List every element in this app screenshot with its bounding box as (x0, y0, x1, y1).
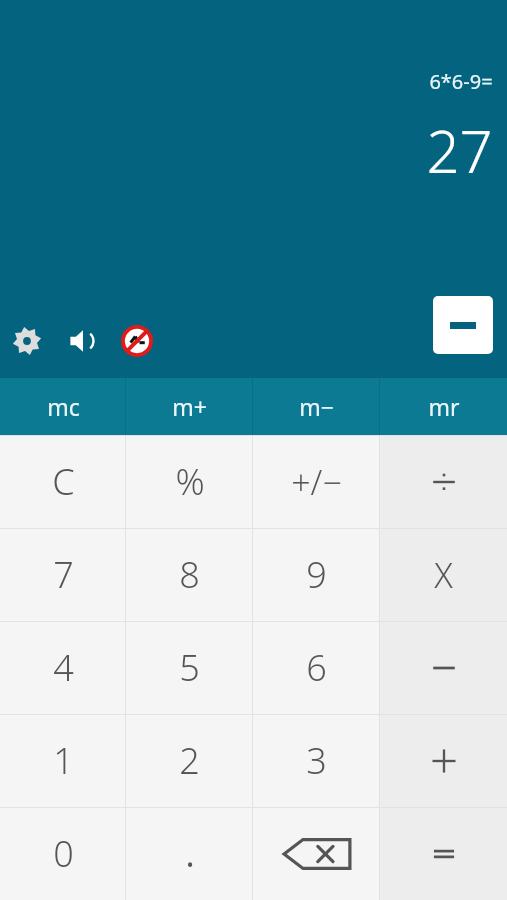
staticText: X (434, 552, 453, 598)
staticText: 9 (306, 550, 327, 599)
staticText: 5 (179, 643, 200, 692)
button[interactable]: 0 (0, 807, 126, 900)
button[interactable]: Settings (8, 322, 46, 360)
button[interactable]: m− (253, 378, 380, 435)
button[interactable]: Sound (64, 322, 102, 360)
button[interactable]: 1 (0, 714, 126, 807)
button[interactable]: mr (380, 378, 507, 435)
staticText: mc (47, 391, 80, 422)
staticText: m+ (172, 391, 207, 422)
button[interactable]: X (380, 528, 507, 621)
staticText: % (175, 457, 205, 506)
button[interactable]: m+ (126, 378, 253, 435)
button[interactable]: +/− (253, 435, 380, 528)
button[interactable]: 9 (253, 528, 380, 621)
button[interactable]: mc (0, 378, 126, 435)
button[interactable] (380, 621, 507, 714)
staticText: 2 (179, 736, 200, 785)
button[interactable]: 6 (253, 621, 380, 714)
button[interactable]: 3 (253, 714, 380, 807)
staticText: mr (428, 391, 460, 422)
button[interactable]: 4 (0, 621, 126, 714)
button[interactable] (253, 807, 380, 900)
staticText: 8 (179, 550, 200, 599)
button[interactable]: Minimize (433, 296, 493, 354)
staticText: 1 (53, 736, 74, 785)
staticText: 3 (306, 736, 327, 785)
button[interactable]: % (126, 435, 253, 528)
button[interactable]: Remove ads (118, 322, 156, 360)
staticText: 0 (53, 829, 74, 878)
button[interactable] (380, 714, 507, 807)
staticText: 4 (53, 643, 74, 692)
button[interactable]: 2 (126, 714, 253, 807)
staticText: C (52, 457, 75, 506)
staticText: 6*6-9= (429, 68, 493, 95)
staticText: 6 (306, 643, 327, 692)
staticText: 27 (426, 111, 493, 190)
button[interactable]: 8 (126, 528, 253, 621)
button[interactable] (380, 435, 507, 528)
button[interactable] (380, 807, 507, 900)
staticText: . (185, 831, 195, 877)
button[interactable]: 7 (0, 528, 126, 621)
button[interactable]: . (126, 807, 253, 900)
button[interactable]: C (0, 435, 126, 528)
staticText: 7 (53, 550, 74, 599)
staticText: m− (299, 391, 334, 422)
staticText: +/− (291, 459, 342, 505)
button[interactable]: 5 (126, 621, 253, 714)
